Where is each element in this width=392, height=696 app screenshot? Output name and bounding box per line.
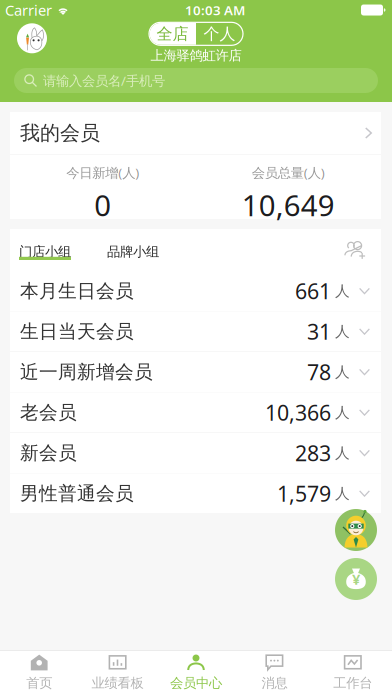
staticText: 人 <box>335 444 350 462</box>
staticText: 31 <box>307 317 331 346</box>
staticText: 生日当天会员 <box>20 320 134 343</box>
button[interactable]: 男性普通会员 <box>10 473 381 514</box>
staticText: 业绩看板 <box>92 675 144 691</box>
button[interactable]: 个人 <box>196 22 243 45</box>
staticText: 人 <box>335 282 350 300</box>
staticText: 消息 <box>261 675 287 691</box>
staticText: 10:03 AM <box>185 1 245 19</box>
staticText: 人 <box>335 322 350 340</box>
button[interactable]: 门店小组 <box>19 229 71 271</box>
button[interactable]: 新会员 <box>10 433 381 473</box>
staticText: 个人 <box>203 24 235 44</box>
staticText: 请输入会员名/手机号 <box>43 72 165 89</box>
staticText: 近一周新增会员 <box>20 360 153 383</box>
staticText: 人 <box>335 363 350 381</box>
staticText: 老会员 <box>20 401 77 424</box>
staticText: 0 <box>94 185 111 224</box>
staticText: 78 <box>307 358 331 386</box>
button[interactable]: 请输入会员名/手机号 <box>14 68 378 93</box>
staticText: 661 <box>295 277 331 305</box>
staticText: 品牌小组 <box>107 244 159 260</box>
button[interactable]: 全店 <box>149 22 196 45</box>
staticText: 1,579 <box>277 479 331 508</box>
staticText: 人 <box>335 403 350 421</box>
staticText: 283 <box>295 439 331 467</box>
staticText: 新会员 <box>20 441 77 464</box>
staticText: 工作台 <box>333 675 372 691</box>
staticText: 会员总量(人) <box>252 164 325 181</box>
button[interactable]: Add member group <box>338 229 372 271</box>
staticText: 会员中心 <box>170 675 222 691</box>
button[interactable]: 品牌小组 <box>107 229 159 271</box>
staticText: 本月生日会员 <box>20 279 134 302</box>
button[interactable]: Profile <box>0 20 60 62</box>
staticText: 10,366 <box>265 398 331 427</box>
staticText: 10,649 <box>242 185 335 224</box>
staticText: 上海驿鸽虹许店 <box>150 47 241 64</box>
staticText: 首页 <box>26 675 52 691</box>
staticText: Carrier <box>5 0 52 20</box>
staticText: 门店小组 <box>19 244 71 260</box>
staticText: 全店 <box>156 24 188 44</box>
staticText: 男性普通会员 <box>20 482 134 505</box>
button[interactable]: 首页 <box>0 651 78 696</box>
button[interactable]: 我的会员 <box>10 112 381 154</box>
button[interactable]: 工作台 <box>314 651 392 696</box>
button[interactable]: 生日当天会员 <box>10 311 381 352</box>
button[interactable]: 近一周新增会员 <box>10 352 381 392</box>
button[interactable]: Payments <box>335 558 377 600</box>
button[interactable]: Assistant <box>335 509 377 551</box>
staticText: 人 <box>335 484 350 502</box>
button[interactable]: 会员中心 <box>157 651 235 696</box>
button[interactable]: 本月生日会员 <box>10 271 381 311</box>
staticText: 我的会员 <box>20 121 100 145</box>
button[interactable]: 老会员 <box>10 392 381 433</box>
staticText: ¥ <box>352 569 360 589</box>
button[interactable]: 业绩看板 <box>78 651 157 696</box>
staticText: 今日新增(人) <box>66 164 139 181</box>
button[interactable]: 消息 <box>235 651 314 696</box>
